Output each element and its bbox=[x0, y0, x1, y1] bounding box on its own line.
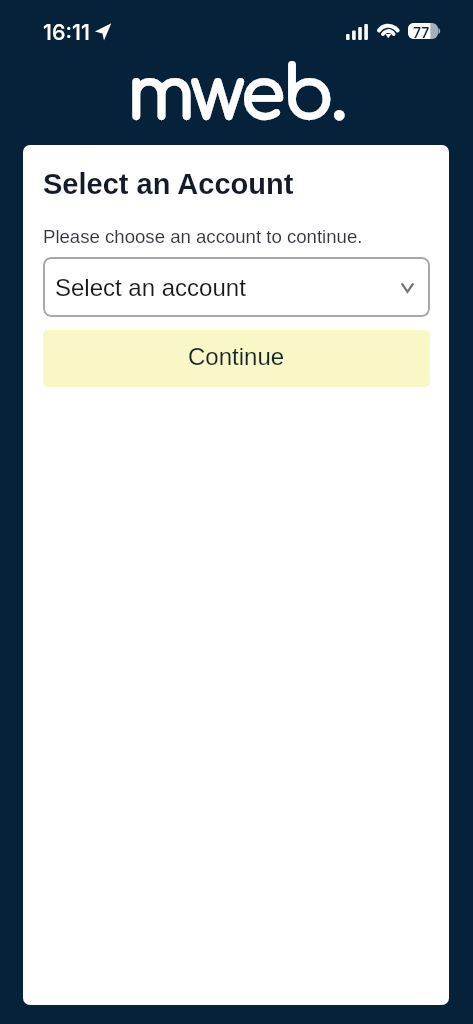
staticText: 77 bbox=[413, 24, 430, 41]
staticText: mweb. bbox=[127, 56, 346, 128]
staticText: Select an Account bbox=[43, 168, 294, 200]
button[interactable]: Select an account bbox=[43, 257, 430, 317]
button[interactable]: Continue bbox=[43, 330, 430, 387]
staticText: 16:11 bbox=[43, 19, 90, 45]
staticText: Please choose an account to continue. bbox=[43, 226, 363, 247]
staticText: Select an account bbox=[55, 274, 401, 301]
staticText: Continue bbox=[188, 343, 285, 370]
